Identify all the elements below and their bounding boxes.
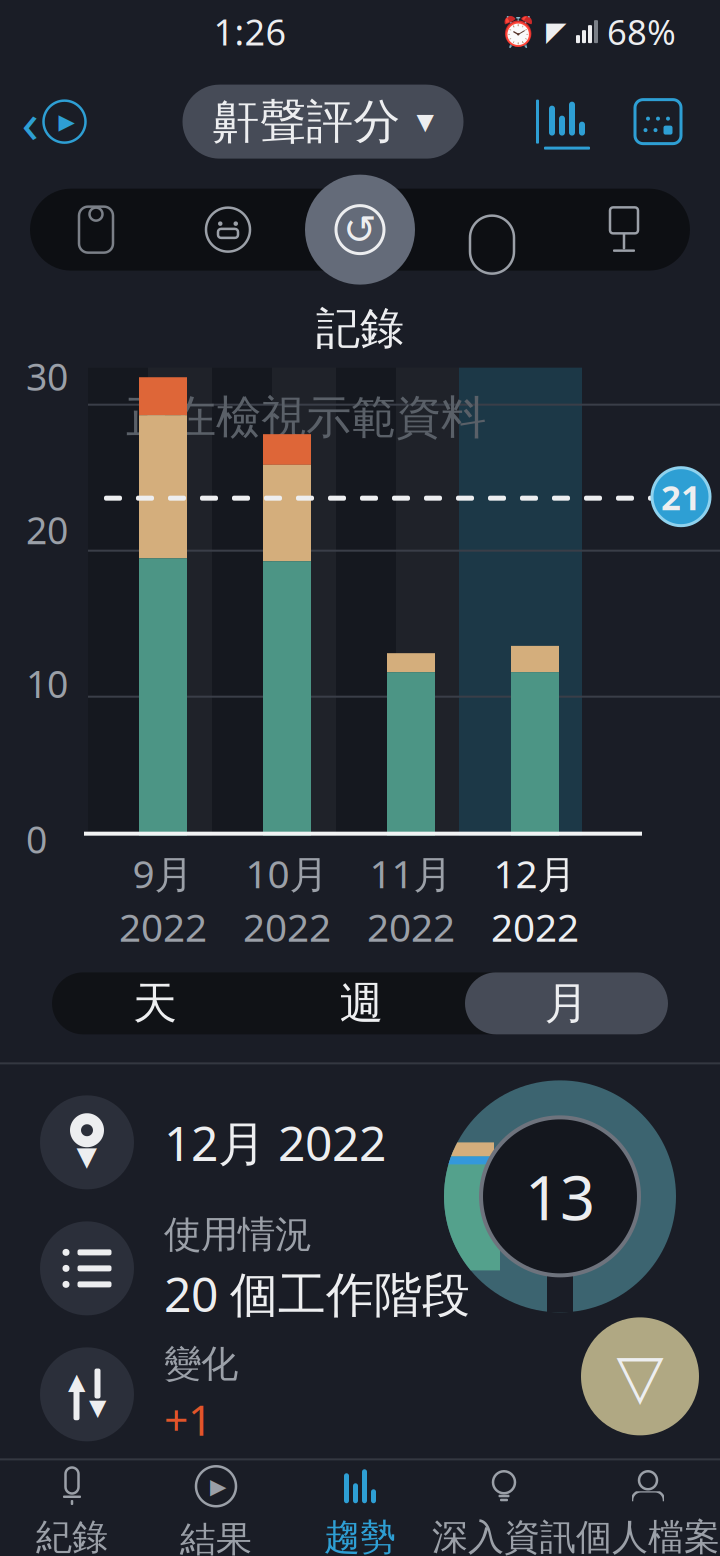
staticText: 記錄: [316, 302, 404, 356]
button[interactable]: Calendar view: [632, 96, 684, 148]
staticText: 10月: [245, 848, 328, 899]
button[interactable]: 月: [465, 972, 668, 1034]
staticText: ▲: [68, 1368, 85, 1394]
button[interactable]: 天: [52, 972, 258, 1034]
staticText: 0: [26, 814, 47, 864]
staticText: 結果: [180, 1517, 252, 1556]
staticText: 2022: [367, 901, 455, 952]
staticText: 30: [26, 351, 68, 401]
button[interactable]: Filter: [578, 1314, 702, 1438]
staticText: 鼾聲評分: [212, 93, 400, 150]
button[interactable]: 使用情況: [40, 1205, 720, 1331]
button[interactable]: ▲: [40, 1331, 720, 1457]
staticText: 個人檔案: [576, 1515, 720, 1556]
button[interactable]: 個人檔案: [576, 1462, 720, 1556]
staticText: 週: [339, 976, 383, 1030]
button[interactable]: 趨勢: [288, 1462, 432, 1556]
staticText: ◤: [546, 16, 567, 47]
button[interactable]: Mood: [162, 189, 294, 271]
staticText: ▽: [616, 1342, 663, 1411]
staticText: ▶: [59, 109, 75, 134]
staticText: ‹: [21, 84, 38, 159]
staticText: 10: [26, 659, 68, 708]
staticText: 9月: [132, 848, 193, 899]
staticText: ▶: [210, 1474, 226, 1498]
staticText: 趨勢: [324, 1515, 396, 1556]
button[interactable]: Chart view: [536, 94, 598, 150]
button[interactable]: 鼾聲評分: [182, 85, 463, 159]
staticText: ▼: [416, 109, 433, 134]
button[interactable]: 深入資訊: [432, 1462, 576, 1556]
staticText: ▼: [89, 1394, 106, 1420]
button[interactable]: History: [302, 172, 418, 288]
staticText: 天: [133, 976, 177, 1030]
button[interactable]: 週: [258, 972, 465, 1034]
staticText: 紀錄: [36, 1515, 108, 1556]
staticText: +1: [164, 1391, 212, 1448]
staticText: 21: [661, 474, 701, 520]
staticText: 變化: [164, 1341, 238, 1387]
staticText: 正在檢視示範資料: [126, 390, 486, 445]
staticText: 使用情況: [164, 1212, 312, 1257]
button[interactable]: Device: [426, 189, 558, 271]
button[interactable]: ▼: [40, 1079, 720, 1205]
button[interactable]: ▶: [144, 1462, 288, 1556]
staticText: 13: [525, 1156, 595, 1237]
button[interactable]: Alcohol: [558, 189, 690, 271]
staticText: 20 個工作階段: [164, 1261, 470, 1325]
staticText: 12月 2022: [164, 1110, 386, 1174]
staticText: ↺: [343, 207, 377, 252]
staticText: 2022: [491, 901, 579, 952]
button[interactable]: 紀錄: [0, 1462, 144, 1556]
staticText: 12月: [493, 848, 576, 899]
staticText: ⏰: [500, 15, 537, 48]
staticText: 20: [26, 505, 68, 555]
staticText: 2022: [243, 901, 331, 952]
staticText: 11月: [369, 848, 452, 899]
button[interactable]: Back: [0, 82, 110, 162]
staticText: 深入資訊: [432, 1515, 576, 1556]
button[interactable]: Weight: [30, 189, 162, 271]
staticText: 月: [544, 976, 588, 1030]
staticText: 2022: [119, 901, 207, 952]
staticText: ▼: [76, 1141, 97, 1171]
staticText: 68%: [607, 9, 676, 55]
staticText: 1:26: [213, 8, 286, 55]
